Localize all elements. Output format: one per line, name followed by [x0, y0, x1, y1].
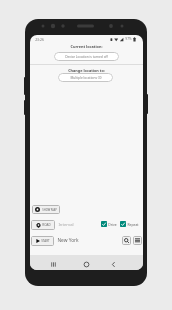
button[interactable]: [120, 221, 126, 227]
staticText: Device Location is turned off: [65, 55, 108, 59]
button[interactable]: [48, 259, 59, 270]
button[interactable]: [81, 259, 92, 270]
staticText: Current location:: [70, 44, 103, 49]
staticText: SHOW MAP: [42, 208, 57, 212]
staticText: New York: [57, 237, 79, 244]
button[interactable]: ROAD: [31, 220, 55, 230]
button[interactable]: [101, 221, 107, 227]
staticText: 97%: [125, 37, 132, 41]
button[interactable]: [133, 236, 142, 245]
staticText: 23:26: [35, 37, 44, 42]
staticText: Repeat: [127, 222, 139, 227]
button[interactable]: Multiple locations (3): [58, 73, 113, 82]
button[interactable]: [122, 236, 131, 245]
button[interactable]: Device Location is turned off: [54, 52, 119, 61]
button[interactable]: [108, 259, 119, 270]
staticText: ROAD: [42, 223, 51, 227]
staticText: Multiple locations (3): [70, 76, 102, 80]
staticText: Drive: [108, 222, 117, 227]
button[interactable]: SHOW MAP: [32, 205, 60, 214]
staticText: Change location to:: [68, 68, 105, 73]
staticText: Interval: [58, 222, 74, 228]
staticText: START: [41, 239, 50, 243]
button[interactable]: START: [31, 236, 54, 246]
